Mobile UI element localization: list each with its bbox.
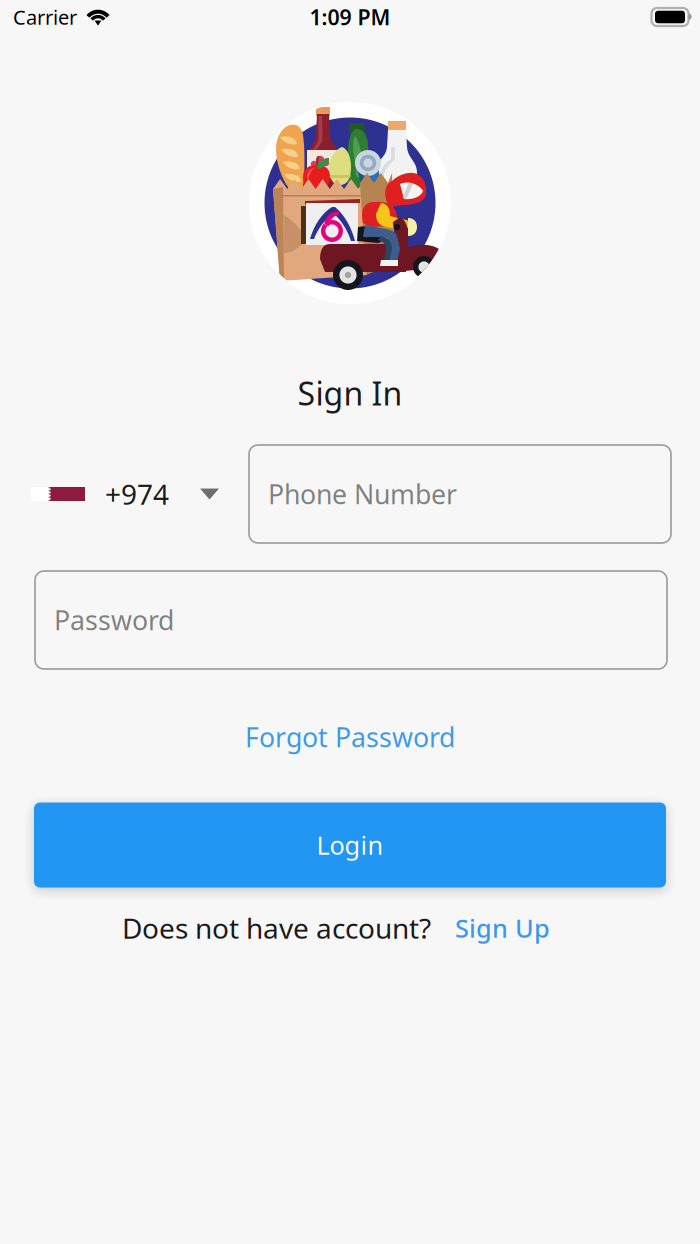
button[interactable]: Password bbox=[35, 571, 667, 669]
staticText: Sign In bbox=[297, 372, 402, 414]
button[interactable]: +974 bbox=[0, 445, 218, 543]
staticText: Login bbox=[316, 828, 383, 862]
button[interactable]: Sign Up bbox=[455, 911, 550, 945]
staticText: Sign Up bbox=[455, 911, 550, 945]
staticText: Password bbox=[54, 602, 174, 638]
button[interactable]: Login bbox=[34, 802, 666, 887]
staticText: 1:09 PM bbox=[309, 3, 390, 31]
staticText: Carrier bbox=[13, 4, 77, 30]
staticText: Forgot Password bbox=[245, 719, 455, 755]
staticText: Phone Number bbox=[268, 476, 457, 512]
button[interactable]: Phone Number bbox=[249, 445, 671, 543]
staticText: Does not have account? bbox=[122, 909, 431, 947]
button[interactable]: Forgot Password bbox=[34, 717, 666, 757]
staticText: +974 bbox=[105, 475, 169, 513]
